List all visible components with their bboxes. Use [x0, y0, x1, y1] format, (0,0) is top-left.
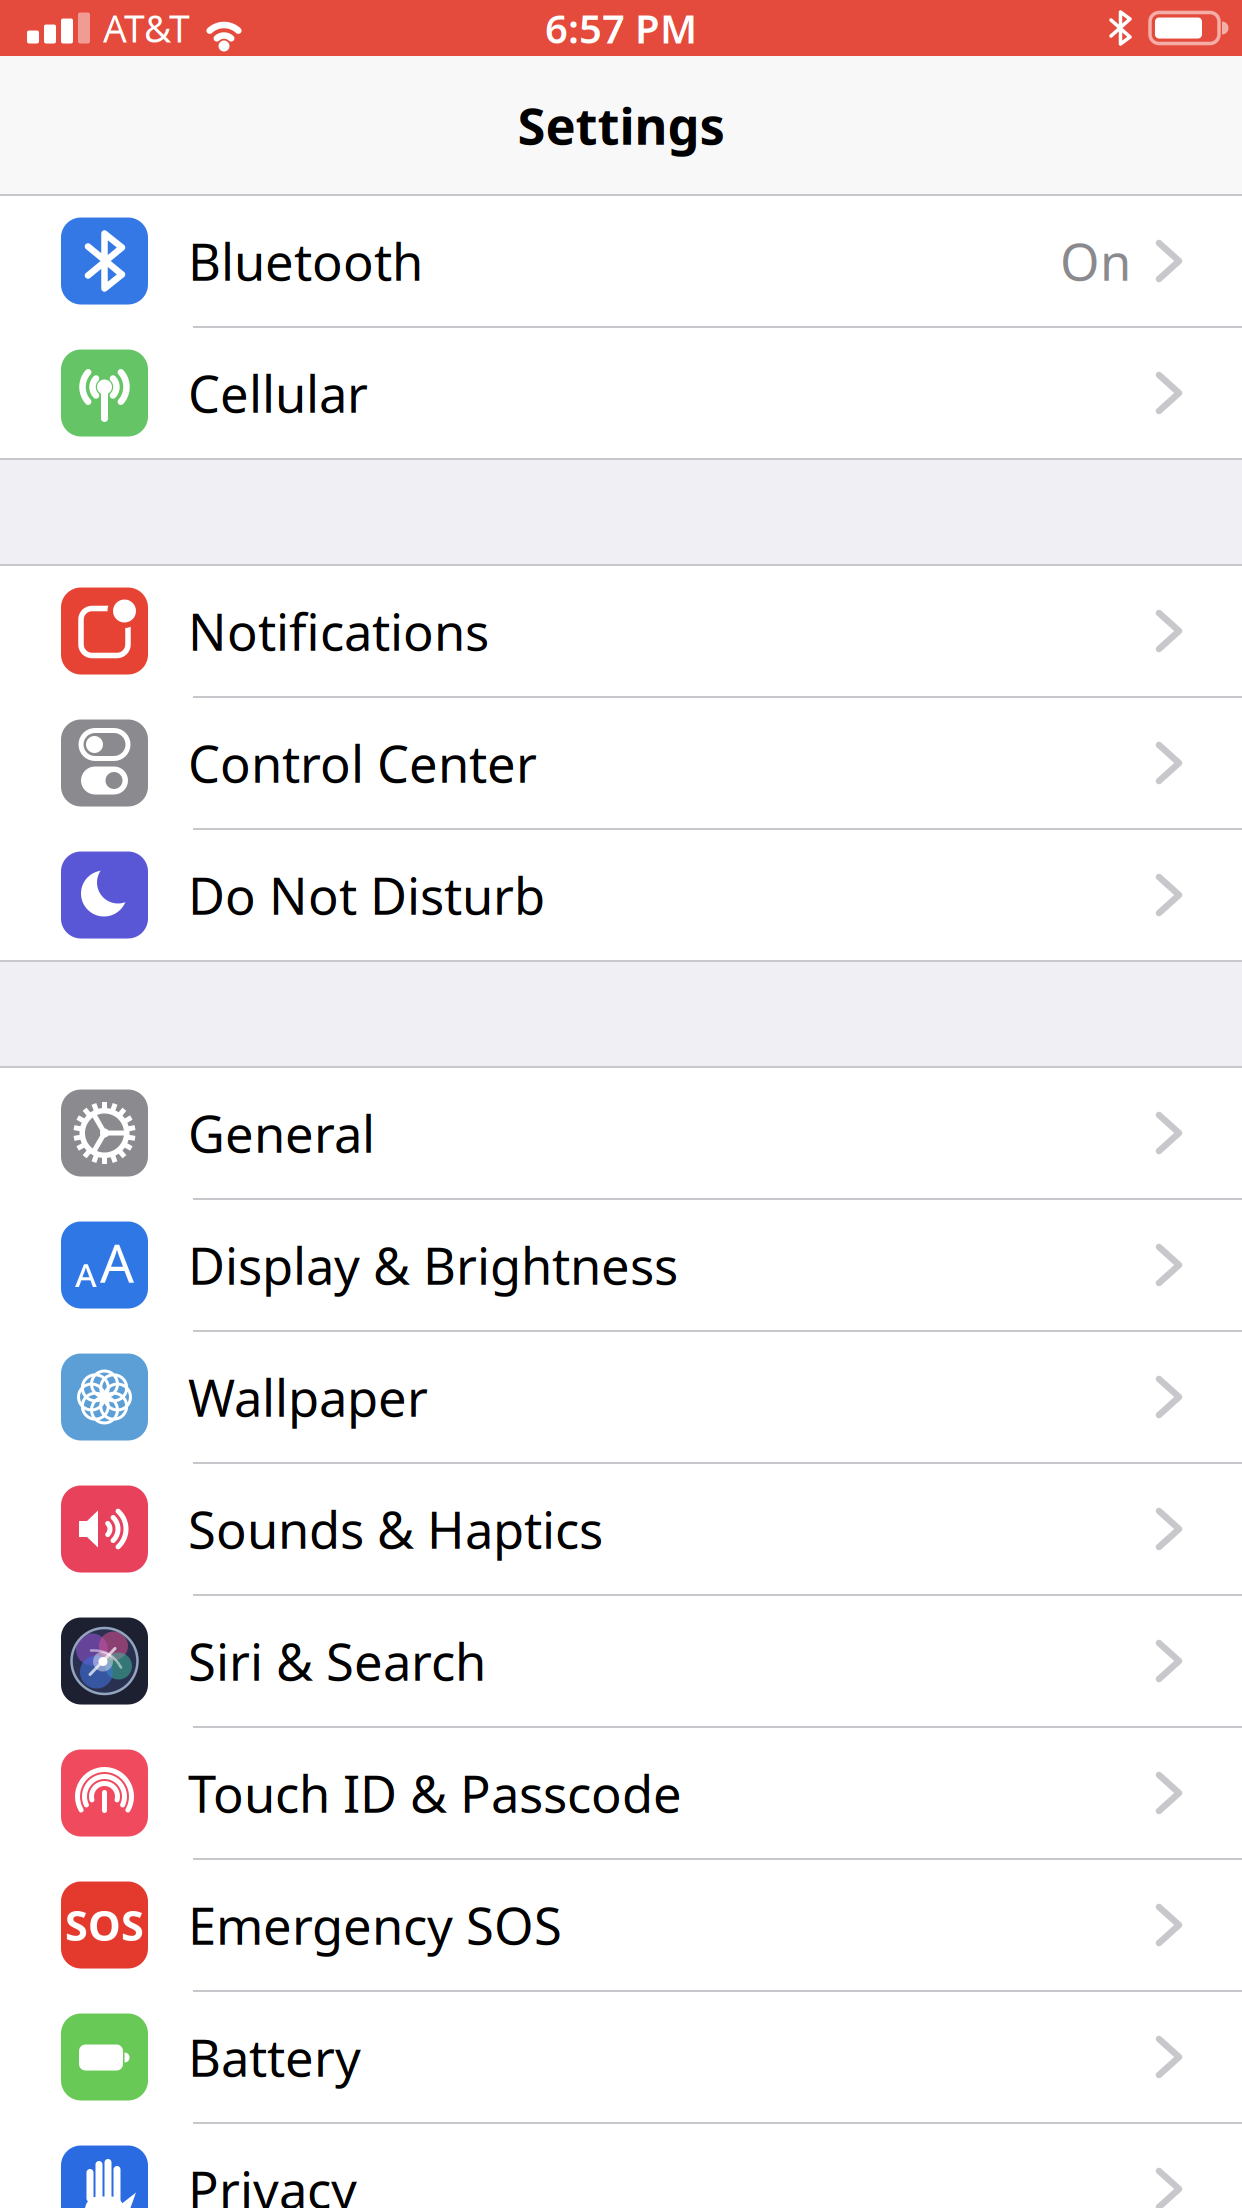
- staticText: Privacy: [188, 2155, 357, 2208]
- staticText: Wallpaper: [188, 1363, 428, 1431]
- button[interactable]: General: [0, 1068, 1242, 1198]
- staticText: Notifications: [188, 597, 489, 665]
- button[interactable]: Battery: [0, 1992, 1242, 2122]
- staticText: AT&T: [103, 3, 190, 53]
- button[interactable]: SOS: [0, 1860, 1242, 1990]
- staticText: 6:57 PM: [545, 1, 697, 54]
- staticText: A: [75, 1252, 97, 1296]
- staticText: Cellular: [188, 359, 368, 427]
- button[interactable]: Privacy: [0, 2124, 1242, 2208]
- button[interactable]: Wallpaper: [0, 1332, 1242, 1462]
- staticText: Sounds & Haptics: [188, 1495, 603, 1563]
- staticText: Settings: [517, 91, 724, 159]
- staticText: A: [100, 1227, 134, 1297]
- button[interactable]: A: [0, 1200, 1242, 1330]
- button[interactable]: Touch ID & Passcode: [0, 1728, 1242, 1858]
- staticText: SOS: [65, 1898, 144, 1952]
- button[interactable]: Bluetooth: [0, 196, 1242, 326]
- button[interactable]: Control Center: [0, 698, 1242, 828]
- staticText: Battery: [188, 2023, 361, 2091]
- staticText: Touch ID & Passcode: [188, 1759, 682, 1827]
- button[interactable]: Notifications: [0, 566, 1242, 696]
- staticText: Display & Brightness: [188, 1231, 678, 1299]
- staticText: Control Center: [188, 729, 537, 797]
- staticText: General: [188, 1099, 375, 1167]
- staticText: Emergency SOS: [188, 1891, 562, 1959]
- button[interactable]: Siri & Search: [0, 1596, 1242, 1726]
- button[interactable]: Do Not Disturb: [0, 830, 1242, 960]
- staticText: Siri & Search: [188, 1627, 486, 1695]
- staticText: On: [1060, 227, 1131, 295]
- staticText: Bluetooth: [188, 227, 423, 295]
- staticText: Do Not Disturb: [188, 861, 545, 929]
- button[interactable]: Sounds & Haptics: [0, 1464, 1242, 1594]
- button[interactable]: Cellular: [0, 328, 1242, 458]
